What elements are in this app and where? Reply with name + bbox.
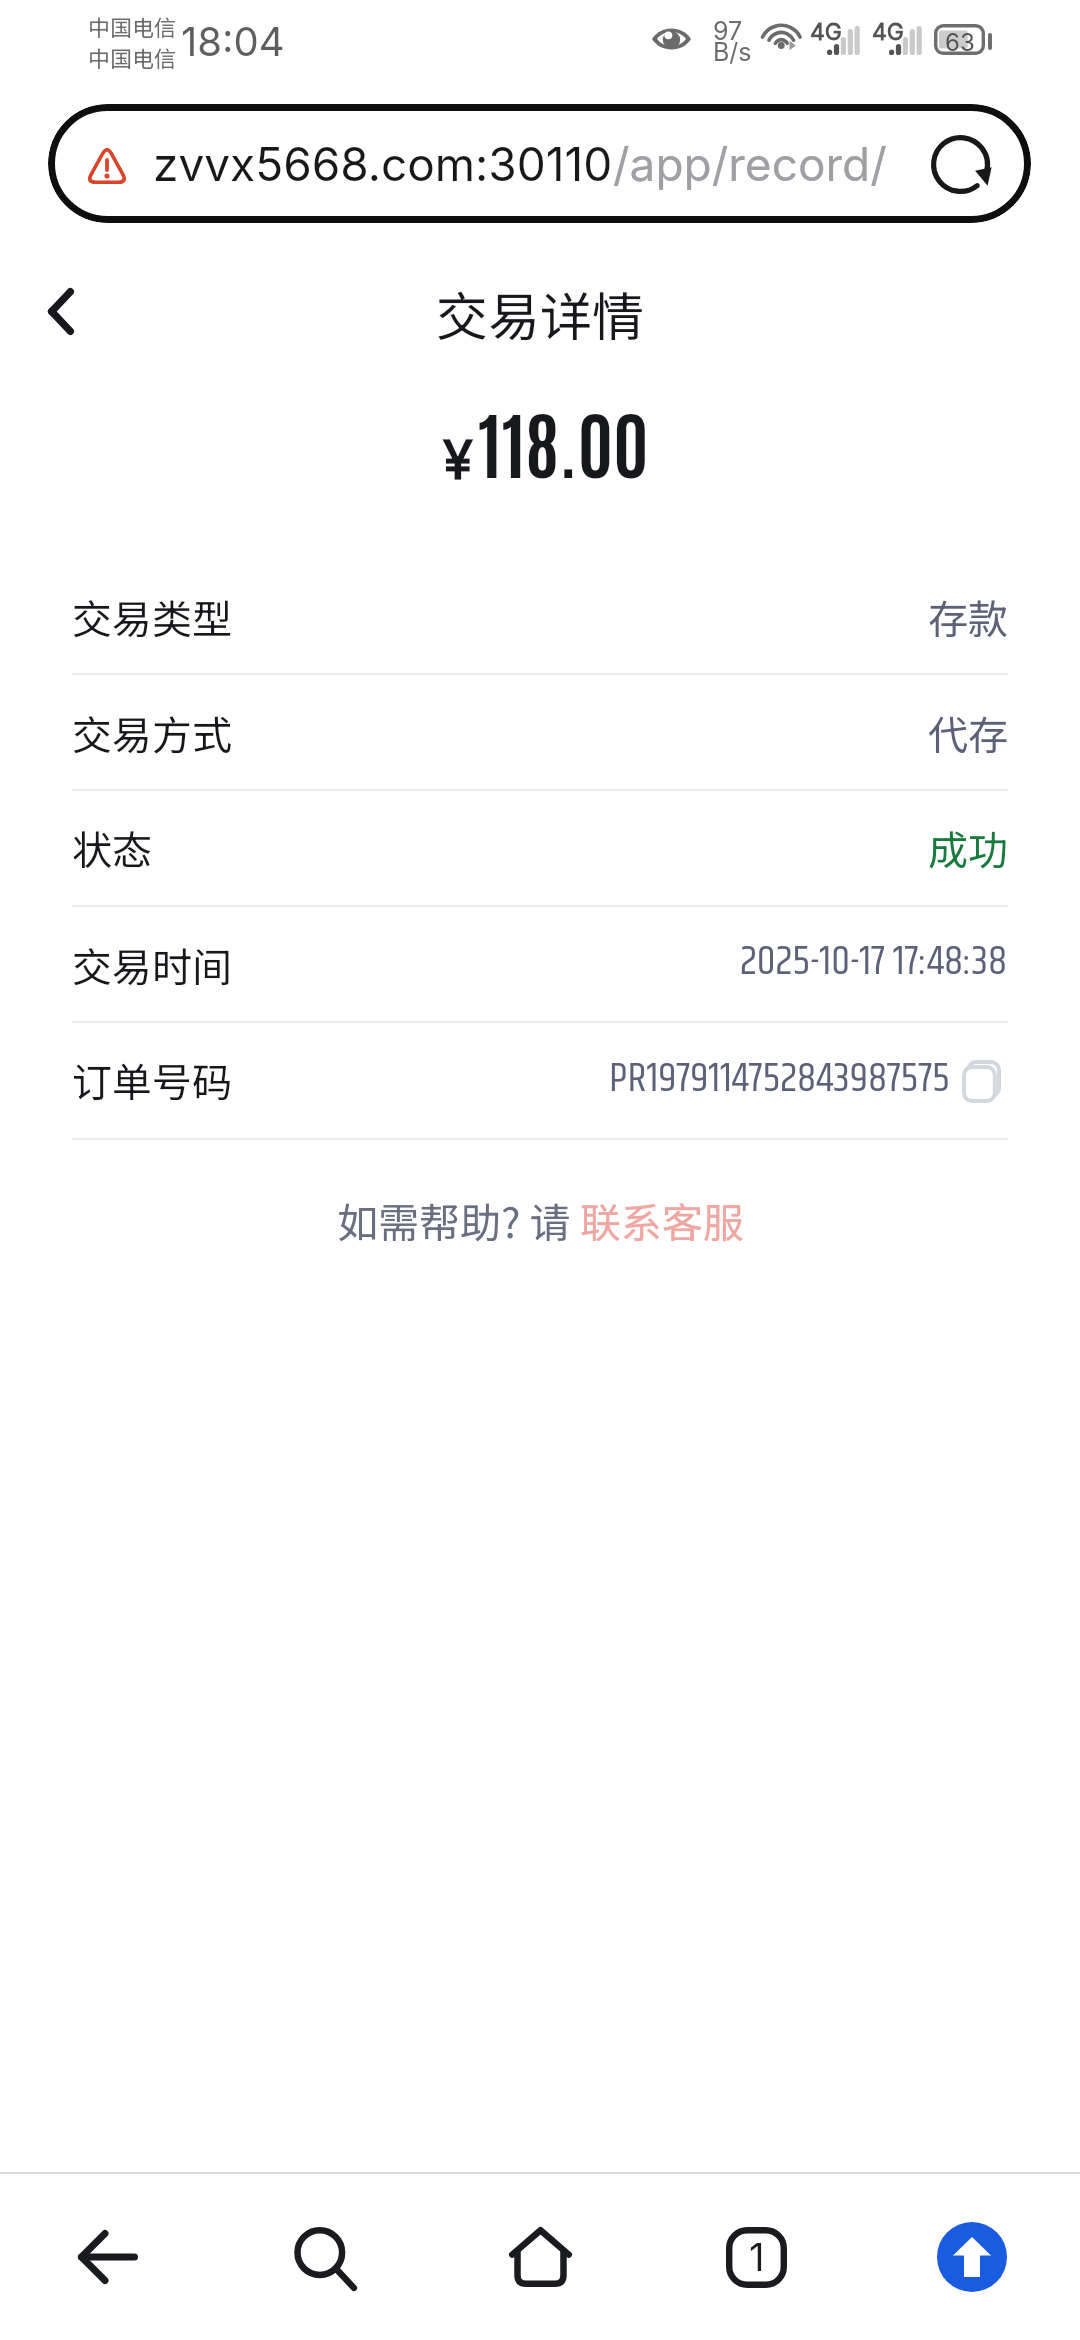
staticText: 97 B/s — [713, 16, 752, 67]
button[interactable]: Scroll to top — [864, 2174, 1080, 2340]
staticText: /app/record/ — [613, 136, 887, 192]
button[interactable]: Tabs — [648, 2174, 864, 2340]
staticText: 63 — [945, 28, 975, 57]
staticText: 118.00 — [478, 395, 649, 488]
staticText: 1 — [749, 2234, 765, 2280]
button[interactable]: Reload — [927, 131, 993, 197]
button[interactable]: Search — [216, 2174, 432, 2340]
staticText: 中国电信 中国电信 — [88, 10, 177, 73]
staticText: PR1979114752843987575 — [609, 1047, 950, 1111]
button[interactable]: Back — [14, 264, 108, 358]
staticText: 4G — [810, 18, 843, 46]
button[interactable]: Home — [432, 2174, 648, 2340]
staticText: zvvx5668.com:30110 — [153, 136, 613, 192]
button[interactable]: 如需帮助? 请 — [337, 1190, 744, 1249]
staticText: 交易类型 — [72, 588, 232, 646]
staticText: 如需帮助? 请 — [337, 1190, 580, 1249]
button[interactable]: Back — [0, 2174, 216, 2340]
staticText: 交易详情 — [436, 276, 645, 351]
staticText: 状态 — [72, 819, 152, 877]
staticText: 交易方式 — [72, 704, 232, 762]
staticText: ¥ — [443, 427, 473, 492]
staticText: 2025-10-17 17:48:38 — [740, 930, 1008, 994]
staticText: 成功 — [928, 819, 1008, 877]
button[interactable]: Copy order number — [962, 1060, 1001, 1103]
staticText: 交易时间 — [72, 936, 232, 994]
staticText: 联系客服 — [580, 1190, 744, 1249]
staticText: 订单号码 — [72, 1051, 232, 1109]
staticText: 代存 — [928, 704, 1008, 762]
staticText: 存款 — [928, 588, 1008, 646]
staticText: 18:04 — [181, 17, 285, 65]
button[interactable]: zvvx5668.com:30110 — [48, 104, 1031, 223]
staticText: 4G — [872, 18, 905, 46]
